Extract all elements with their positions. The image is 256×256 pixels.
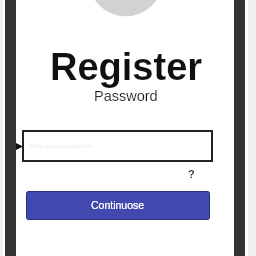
staticText: Enter your password here [30,143,93,149]
other: Focus password field [16,143,23,150]
staticText: Continuose [91,199,145,211]
button[interactable]: Continuose [26,191,210,220]
button[interactable]: Help [184,167,198,181]
staticText: Register [50,46,203,88]
staticText: ? [188,168,195,180]
staticText: Password [94,88,158,104]
button[interactable]: Enter your password here [22,130,213,162]
